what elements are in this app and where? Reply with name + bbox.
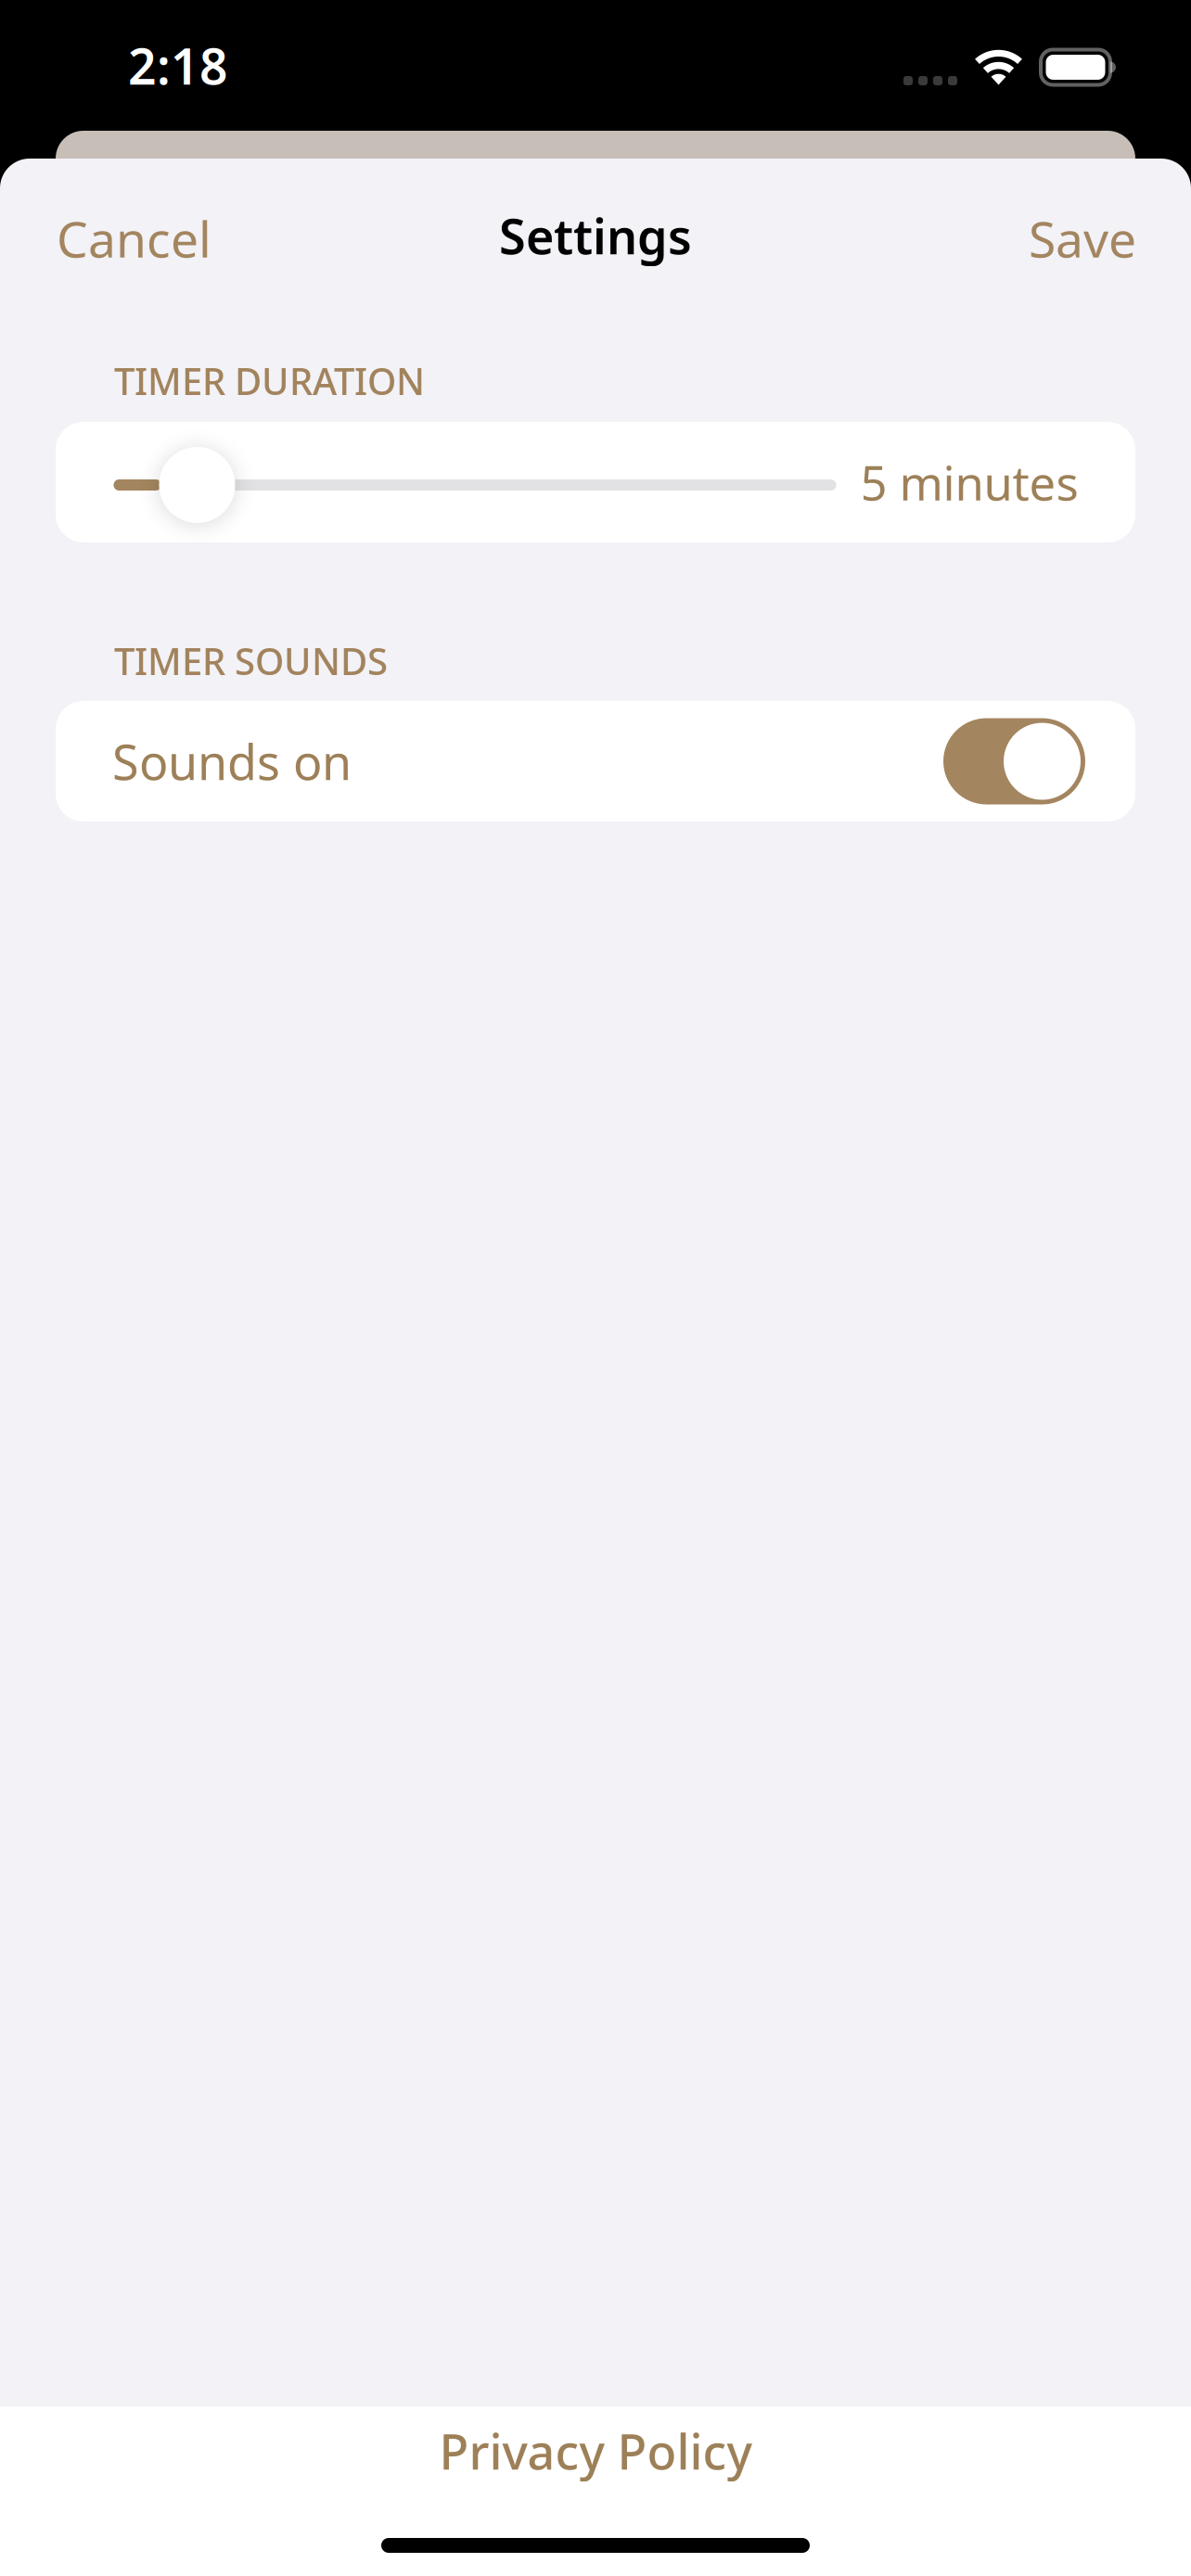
staticText: 2:18 — [128, 33, 228, 98]
staticText: TIMER DURATION — [114, 356, 425, 405]
staticText: TIMER SOUNDS — [114, 636, 388, 685]
staticText: 5 minutes — [860, 451, 1078, 513]
button[interactable]: Privacy Policy — [336, 2419, 855, 2482]
staticText: Settings — [499, 204, 692, 268]
button[interactable]: Save — [1014, 192, 1151, 285]
staticText: Sounds on — [112, 729, 352, 793]
staticText: Privacy Policy — [439, 2419, 752, 2483]
button[interactable]: Timer duration — [114, 447, 836, 523]
staticText: Save — [1029, 205, 1136, 271]
staticText: Cancel — [57, 205, 211, 271]
button[interactable]: Cancel — [42, 192, 226, 285]
button[interactable]: Sounds on — [56, 701, 1135, 822]
